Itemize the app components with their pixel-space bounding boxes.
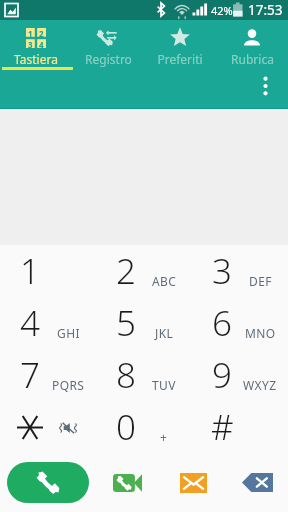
button[interactable]: More options xyxy=(253,73,278,99)
staticText: Tastiera xyxy=(14,51,58,67)
staticText: MNO xyxy=(245,325,276,341)
staticText: + xyxy=(160,429,168,445)
button[interactable] xyxy=(0,401,96,453)
staticText: 4 xyxy=(20,299,40,347)
button[interactable]: Backspace xyxy=(242,473,273,492)
button[interactable]: 4 xyxy=(0,297,96,349)
staticText: PQRS xyxy=(52,377,85,393)
staticText: 7 xyxy=(20,351,40,399)
button[interactable]: # xyxy=(192,401,288,453)
staticText: 1 xyxy=(28,28,33,37)
button[interactable]: Video call xyxy=(113,474,142,492)
staticText: TUV xyxy=(152,377,176,393)
staticText: GHI xyxy=(57,325,80,341)
button[interactable]: 6 xyxy=(192,297,288,349)
staticText: 3 xyxy=(212,247,232,295)
button[interactable]: 0 xyxy=(96,401,192,453)
staticText: 3 xyxy=(28,39,33,48)
staticText: DEF xyxy=(249,273,272,289)
button[interactable]: Call xyxy=(7,462,89,503)
button[interactable]: Rubrica xyxy=(216,20,288,71)
button[interactable]: 2 xyxy=(96,245,192,297)
button[interactable]: 8 xyxy=(96,349,192,401)
staticText: JKL xyxy=(155,325,174,341)
staticText: 1 xyxy=(20,247,40,295)
button[interactable]: 9 xyxy=(192,349,288,401)
staticText: Preferiti xyxy=(157,51,203,67)
button[interactable]: 3 xyxy=(192,245,288,297)
staticText: 2 xyxy=(39,28,44,37)
staticText: 2 xyxy=(116,247,136,295)
staticText: 0 xyxy=(116,403,136,451)
staticText: 8 xyxy=(116,351,136,399)
staticText: # xyxy=(211,403,234,451)
staticText: Rubrica xyxy=(231,51,274,67)
staticText: ABC xyxy=(152,273,177,289)
staticText: 9 xyxy=(212,351,232,399)
staticText: 17:53 xyxy=(248,1,283,19)
button[interactable]: 1 xyxy=(0,245,96,297)
staticText: 6 xyxy=(212,299,232,347)
staticText: 4 xyxy=(39,39,44,48)
button[interactable]: 1 xyxy=(0,20,72,71)
button[interactable]: 7 xyxy=(0,349,96,401)
staticText: Registro xyxy=(85,51,132,67)
button[interactable]: Preferiti xyxy=(144,20,216,71)
button[interactable]: Registro xyxy=(72,20,144,71)
staticText: 42% xyxy=(211,3,233,18)
staticText: 5 xyxy=(116,299,136,347)
button[interactable]: 5 xyxy=(96,297,192,349)
button[interactable]: Send message xyxy=(180,473,207,493)
staticText: WXYZ xyxy=(243,377,277,393)
